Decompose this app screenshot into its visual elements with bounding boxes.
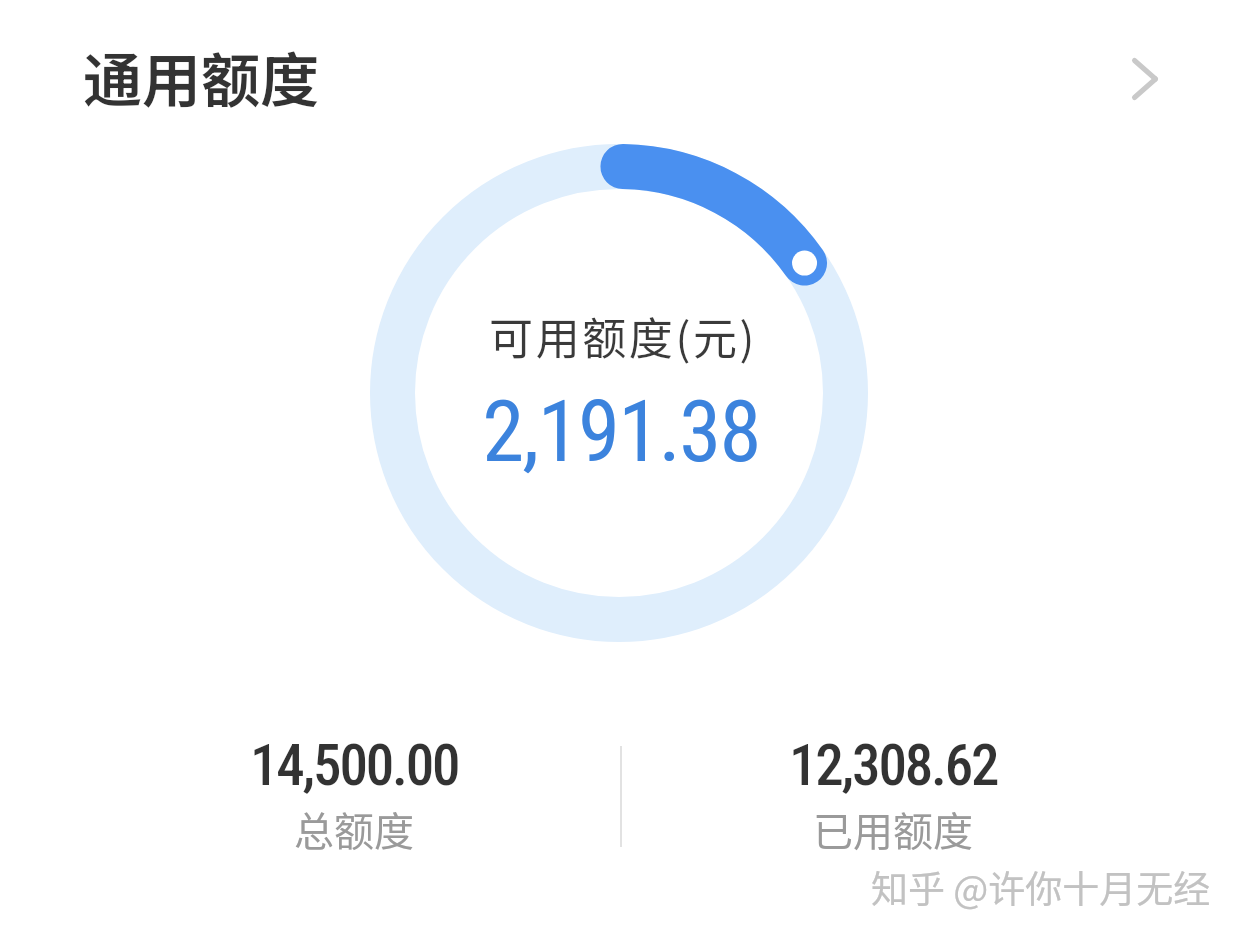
staticText: 可用额度(元) <box>2 304 1242 368</box>
button[interactable]: 查看额度详情 <box>1096 28 1196 128</box>
staticText: 14,500.00 <box>250 732 459 799</box>
button[interactable]: 14,500.00 <box>154 732 554 858</box>
button[interactable]: 12,308.62 <box>693 732 1093 858</box>
staticText: 12,308.62 <box>789 732 998 799</box>
staticText: 总额度 <box>294 800 414 858</box>
button[interactable]: 可用额度 2,191.38 元 <box>370 144 868 642</box>
staticText: 通用额度 <box>83 34 320 119</box>
staticText: 知乎 @许你十月无经 <box>871 860 1211 914</box>
staticText: 已用额度 <box>813 800 973 858</box>
staticText: 2,191.38 <box>0 382 1242 482</box>
